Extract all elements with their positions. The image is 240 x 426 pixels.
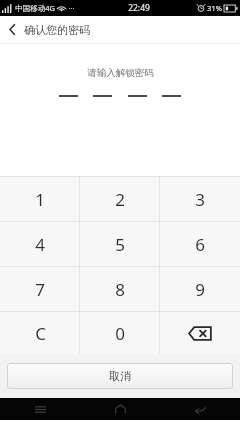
staticText: 0 [115,322,125,345]
staticText: 请输入解锁密码 [87,67,154,79]
button[interactable]: Backspace [160,312,240,354]
button[interactable]: 6 [160,222,240,266]
button[interactable]: 3 [160,177,240,221]
staticText: 22:49 [128,2,150,14]
staticText: 8 [115,278,125,301]
staticText: 4 [35,233,45,256]
button[interactable]: Back [160,398,240,420]
button[interactable]: Menu [0,398,80,420]
staticText: 中国移动4G [15,3,55,13]
staticText: 7 [35,278,45,301]
button[interactable]: Home [80,398,160,420]
staticText: C [35,322,46,345]
staticText: 6 [195,233,205,256]
button[interactable]: 1 [0,177,80,221]
button[interactable]: Back [0,16,24,43]
button[interactable]: C [0,312,80,354]
staticText: 确认您的密码 [24,23,90,37]
staticText: 9 [195,278,205,301]
button[interactable]: 7 [0,267,80,311]
button[interactable]: 5 [80,222,160,266]
button[interactable]: 0 [80,312,160,354]
button[interactable]: 取消 [7,363,233,389]
button[interactable]: 9 [160,267,240,311]
staticText: 2 [115,188,125,211]
button[interactable]: 2 [80,177,160,221]
staticText: 取消 [109,369,131,383]
button[interactable]: 8 [80,267,160,311]
button[interactable]: 4 [0,222,80,266]
staticText: 3 [195,188,205,211]
staticText: ··· [68,3,75,13]
staticText: 1 [35,188,45,211]
staticText: 31% [207,3,222,13]
staticText: 5 [115,233,125,256]
